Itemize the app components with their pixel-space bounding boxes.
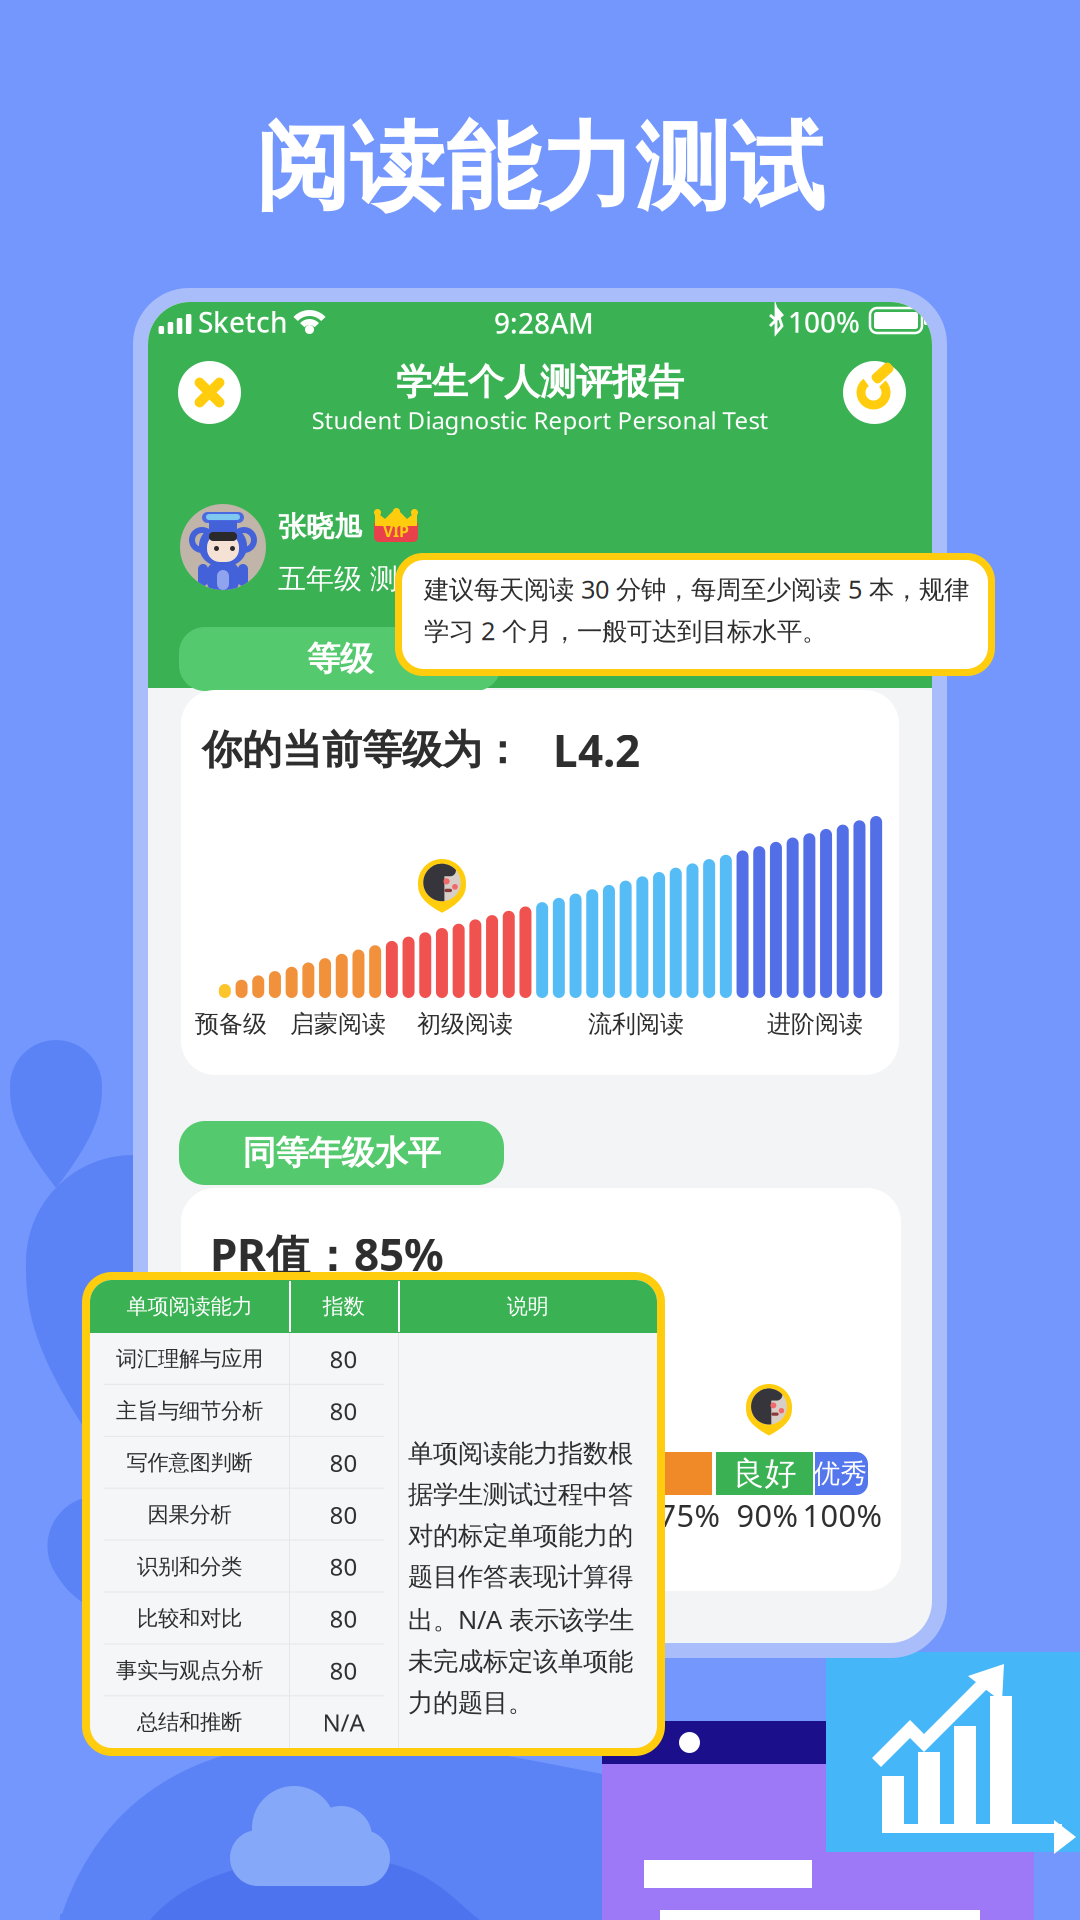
staticText: 识别和分类 xyxy=(137,1553,242,1580)
staticText: 建议每天阅读 30 分钟，每周至少阅读 5 本，规律学习 2 个月，一般可达到目… xyxy=(424,572,969,647)
staticText: 总结和推断 xyxy=(137,1709,242,1735)
staticText: 五年级 测试 xyxy=(278,562,426,596)
staticText: 80 xyxy=(329,1343,357,1375)
staticText: 100% xyxy=(802,1495,881,1535)
staticText: 写作意图判断 xyxy=(126,1450,252,1476)
staticText: 良好 xyxy=(732,1454,796,1493)
staticText: 进阶阅读 xyxy=(767,1009,863,1039)
staticText: VIP xyxy=(383,520,409,542)
staticText: 事实与观点分析 xyxy=(116,1657,263,1683)
staticText: 初级阅读 xyxy=(417,1009,513,1039)
staticText: 单项阅读能力 xyxy=(126,1293,252,1320)
staticText: 预备级 xyxy=(195,1009,267,1039)
staticText: 等级 xyxy=(307,638,373,679)
staticText: 100% xyxy=(788,303,860,341)
staticText: Student Diagnostic Report Personal Test xyxy=(311,404,768,436)
staticText: 80 xyxy=(329,1654,357,1686)
staticText: 指数 xyxy=(322,1293,364,1320)
staticText: 说明 xyxy=(506,1293,548,1320)
staticText: 因果分析 xyxy=(147,1501,231,1528)
staticText: 9:28AM xyxy=(494,304,594,342)
staticText: 80 xyxy=(329,1395,357,1427)
staticText: 你的当前等级为： xyxy=(202,725,522,774)
staticText: N/A xyxy=(322,1706,364,1738)
staticText: 比较和对比 xyxy=(137,1605,242,1631)
staticText: 该分数说明了你超过了全 xyxy=(210,1294,518,1328)
staticText: 80 xyxy=(329,1602,357,1634)
staticText: 学生个人测评报告 xyxy=(396,360,684,404)
staticText: 80 xyxy=(329,1447,357,1479)
staticText: 80 xyxy=(329,1551,357,1582)
staticText: 80 xyxy=(329,1499,357,1531)
staticText: L4.2 xyxy=(553,721,640,779)
staticText: 启蒙阅读 xyxy=(290,1009,386,1039)
staticText: 75% xyxy=(658,1495,719,1535)
staticText: 流利阅读 xyxy=(588,1009,684,1039)
button[interactable]: Refresh xyxy=(843,361,906,424)
staticText: 词汇理解与应用 xyxy=(116,1346,263,1372)
staticText: 阅读能力测试 xyxy=(255,110,825,226)
staticText: 单项阅读能力指数根据学生测试过程中答对的标定单项能力的题目作答表现计算得出。N/… xyxy=(408,1438,634,1718)
staticText: 张晓旭 xyxy=(278,510,362,544)
staticText: 优秀 xyxy=(813,1457,867,1490)
staticText: PR值：85% xyxy=(210,1225,444,1283)
button[interactable]: Close xyxy=(178,361,241,424)
staticText: Sketch xyxy=(198,303,288,341)
staticText: 同等年级水平 xyxy=(242,1132,440,1173)
staticText: 主旨与细节分析 xyxy=(116,1398,263,1424)
staticText: 90% xyxy=(736,1495,797,1535)
